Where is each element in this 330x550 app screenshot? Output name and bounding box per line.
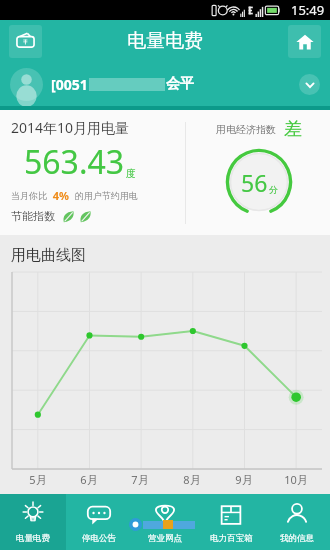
staticText: 56 <box>241 167 268 198</box>
staticText: 营业网点 <box>148 533 182 544</box>
staticText: 我的信息 <box>280 533 314 544</box>
button[interactable]: 营业网点 <box>132 494 198 550</box>
staticText: 度 <box>126 167 136 180</box>
staticText: 电量电费 <box>16 533 50 544</box>
staticText: 会平 <box>166 75 194 93</box>
button[interactable]: Wallet <box>9 25 42 58</box>
staticText: 差 <box>284 118 302 141</box>
staticText: 停电公告 <box>82 533 116 544</box>
button[interactable]: Home <box>288 25 321 58</box>
staticText: 电力百宝箱 <box>210 533 253 544</box>
staticText: 10月 <box>284 472 308 487</box>
staticText: 563.43 <box>24 140 125 184</box>
staticText: 4% <box>47 188 75 203</box>
button[interactable]: 电力百宝箱 <box>198 494 264 550</box>
staticText: 8月 <box>183 472 201 487</box>
button[interactable]: [0051 <box>0 62 330 106</box>
staticText: 6月 <box>80 472 98 487</box>
staticText: [0051 <box>51 75 88 94</box>
staticText: 9月 <box>235 472 253 487</box>
staticText: 用电经济指数 <box>216 123 276 136</box>
staticText: 5月 <box>29 472 47 487</box>
staticText: 节能指数 <box>11 209 55 223</box>
staticText: 的用户节约用电 <box>75 190 138 201</box>
staticText: 电量电费 <box>127 29 203 53</box>
staticText: 15:49 <box>291 1 325 19</box>
staticText: 用电曲线图 <box>11 246 86 265</box>
staticText: 7月 <box>131 472 149 487</box>
button[interactable]: 电量电费 <box>0 494 66 550</box>
button[interactable]: 停电公告 <box>66 494 132 550</box>
staticText: 分 <box>269 184 278 195</box>
staticText: 2014年10月用电量 <box>11 118 130 137</box>
button[interactable]: 我的信息 <box>264 494 330 550</box>
button[interactable]: Expand account <box>299 74 320 95</box>
staticText: 当月你比 <box>11 190 47 201</box>
